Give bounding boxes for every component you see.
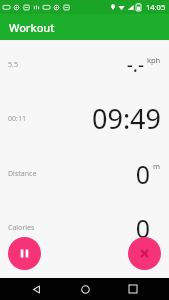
button[interactable]: Pause <box>8 237 41 270</box>
staticText: -.- <box>126 52 144 78</box>
staticText: Calories <box>8 223 35 233</box>
staticText: 0 <box>135 211 150 245</box>
staticText: 00:11 <box>8 114 26 124</box>
button[interactable]: Recent apps <box>121 278 145 300</box>
button[interactable]: Back <box>24 278 48 300</box>
button[interactable]: Stop workout <box>128 237 161 270</box>
staticText: 09:49 <box>91 100 161 137</box>
staticText: 5.5 <box>8 60 18 70</box>
staticText: m <box>153 161 161 171</box>
staticText: Distance <box>8 169 37 179</box>
staticText: Workout <box>9 20 55 35</box>
staticText: kph <box>147 55 161 65</box>
button[interactable]: Home <box>73 278 97 300</box>
staticText: 14:05 <box>146 2 166 12</box>
staticText: 0 <box>135 157 150 191</box>
